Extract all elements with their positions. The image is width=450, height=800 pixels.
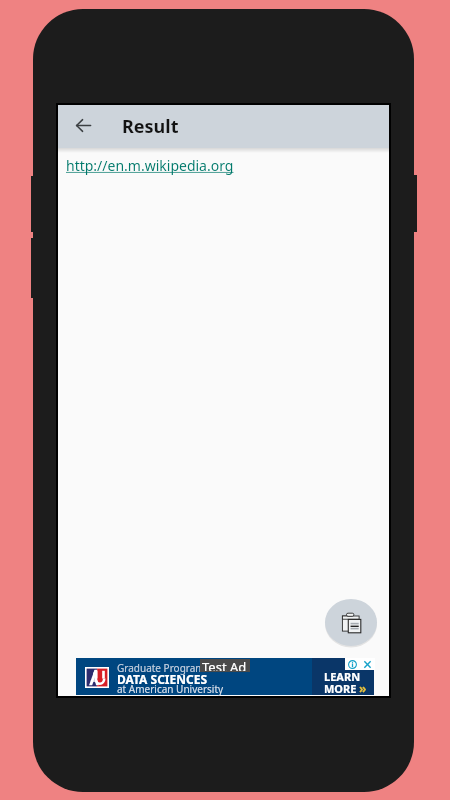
staticText: Graduate Programs in [117, 661, 221, 675]
button[interactable]: Ad info [345, 658, 360, 670]
staticText: Test Ad [202, 658, 247, 671]
staticText: at American University [117, 682, 224, 696]
button[interactable]: Close ad [360, 658, 375, 670]
staticText: DATA SCIENCES [117, 671, 208, 687]
button[interactable]: Back [67, 111, 99, 143]
button[interactable]: Copy to clipboard [325, 599, 377, 646]
staticText: Result [122, 114, 179, 139]
staticText: LEARN [324, 669, 361, 684]
staticText: MORE [324, 681, 357, 696]
button[interactable]: Graduate Programs in [76, 658, 374, 695]
staticText: » [359, 680, 367, 696]
button[interactable]: http://en.m.wikipedia.org [66, 156, 234, 175]
